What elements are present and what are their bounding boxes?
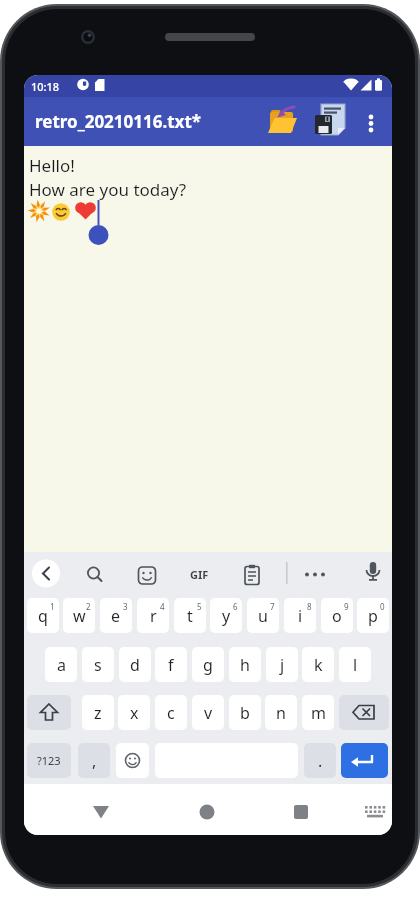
- staticText: retro_20210116.txt*: [35, 110, 202, 133]
- staticText: m: [311, 702, 326, 724]
- button[interactable]: j: [266, 647, 298, 682]
- button[interactable]: n: [265, 695, 297, 730]
- staticText: 2: [86, 601, 91, 612]
- staticText: c: [167, 702, 175, 724]
- staticText: y: [222, 605, 231, 627]
- button[interactable]: [129, 554, 165, 594]
- button[interactable]: m: [302, 695, 334, 730]
- button[interactable]: [357, 794, 392, 830]
- button[interactable]: [283, 794, 319, 830]
- staticText: 10:18: [31, 79, 60, 94]
- staticText: 8: [307, 601, 312, 612]
- button[interactable]: k: [302, 647, 334, 682]
- button[interactable]: y: [210, 598, 242, 633]
- button[interactable]: z: [82, 695, 114, 730]
- staticText: Hello!: [29, 154, 75, 177]
- button[interactable]: d: [119, 647, 151, 682]
- staticText: z: [94, 702, 102, 724]
- staticText: p: [368, 605, 378, 627]
- button[interactable]: o: [321, 598, 353, 633]
- button[interactable]: Hello!: [24, 146, 392, 552]
- staticText: s: [94, 654, 102, 676]
- button[interactable]: x: [118, 695, 150, 730]
- staticText: r: [150, 605, 157, 627]
- button[interactable]: [339, 695, 389, 730]
- staticText: x: [130, 702, 139, 724]
- staticText: How are you today?: [29, 178, 187, 201]
- staticText: w: [73, 605, 86, 627]
- button[interactable]: i: [284, 598, 316, 633]
- button[interactable]: [266, 104, 304, 140]
- staticText: 0: [380, 601, 385, 612]
- staticText: t: [187, 605, 193, 627]
- button[interactable]: [314, 103, 348, 140]
- button[interactable]: [297, 554, 333, 594]
- button[interactable]: ,: [78, 743, 110, 778]
- button[interactable]: [83, 794, 119, 830]
- staticText: d: [130, 654, 140, 676]
- staticText: 4: [160, 601, 165, 612]
- staticText: o: [332, 605, 342, 627]
- button[interactable]: g: [192, 647, 224, 682]
- button[interactable]: [116, 743, 149, 778]
- button[interactable]: q: [27, 598, 59, 633]
- staticText: ,: [92, 750, 97, 772]
- staticText: j: [280, 654, 285, 676]
- staticText: 7: [270, 601, 275, 612]
- staticText: ?123: [37, 753, 61, 768]
- button[interactable]: e: [100, 598, 132, 633]
- button[interactable]: [234, 554, 270, 594]
- button[interactable]: r: [137, 598, 169, 633]
- button[interactable]: u: [247, 598, 279, 633]
- button[interactable]: [355, 554, 391, 594]
- staticText: GIF: [190, 567, 209, 582]
- staticText: .: [318, 750, 323, 772]
- button[interactable]: a: [45, 647, 77, 682]
- staticText: 1: [50, 601, 55, 612]
- staticText: f: [168, 654, 174, 676]
- button[interactable]: [27, 695, 71, 730]
- button[interactable]: h: [229, 647, 261, 682]
- button[interactable]: s: [82, 647, 114, 682]
- button[interactable]: v: [192, 695, 224, 730]
- staticText: 6: [233, 601, 238, 612]
- staticText: a: [57, 654, 66, 676]
- button[interactable]: [77, 554, 113, 594]
- staticText: g: [203, 654, 213, 676]
- button[interactable]: f: [155, 647, 187, 682]
- button[interactable]: [341, 743, 388, 778]
- staticText: b: [240, 702, 250, 724]
- staticText: k: [314, 654, 323, 676]
- staticText: h: [240, 654, 250, 676]
- button[interactable]: p: [357, 598, 389, 633]
- button[interactable]: ?123: [27, 743, 71, 778]
- staticText: l: [353, 654, 358, 676]
- staticText: 9: [344, 601, 349, 612]
- staticText: v: [204, 702, 213, 724]
- staticText: n: [276, 702, 286, 724]
- staticText: i: [298, 605, 303, 627]
- staticText: u: [258, 605, 268, 627]
- staticText: 3: [123, 601, 128, 612]
- button[interactable]: .: [304, 743, 336, 778]
- staticText: 5: [197, 601, 202, 612]
- button[interactable]: [189, 794, 225, 830]
- button[interactable]: t: [174, 598, 206, 633]
- button[interactable]: [360, 104, 384, 140]
- staticText: q: [38, 605, 48, 627]
- button[interactable]: c: [155, 695, 187, 730]
- button[interactable]: b: [229, 695, 261, 730]
- button[interactable]: GIF: [181, 554, 217, 594]
- staticText: e: [111, 605, 121, 627]
- button[interactable]: w: [63, 598, 95, 633]
- button[interactable]: l: [339, 647, 371, 682]
- button[interactable]: [28, 554, 64, 594]
